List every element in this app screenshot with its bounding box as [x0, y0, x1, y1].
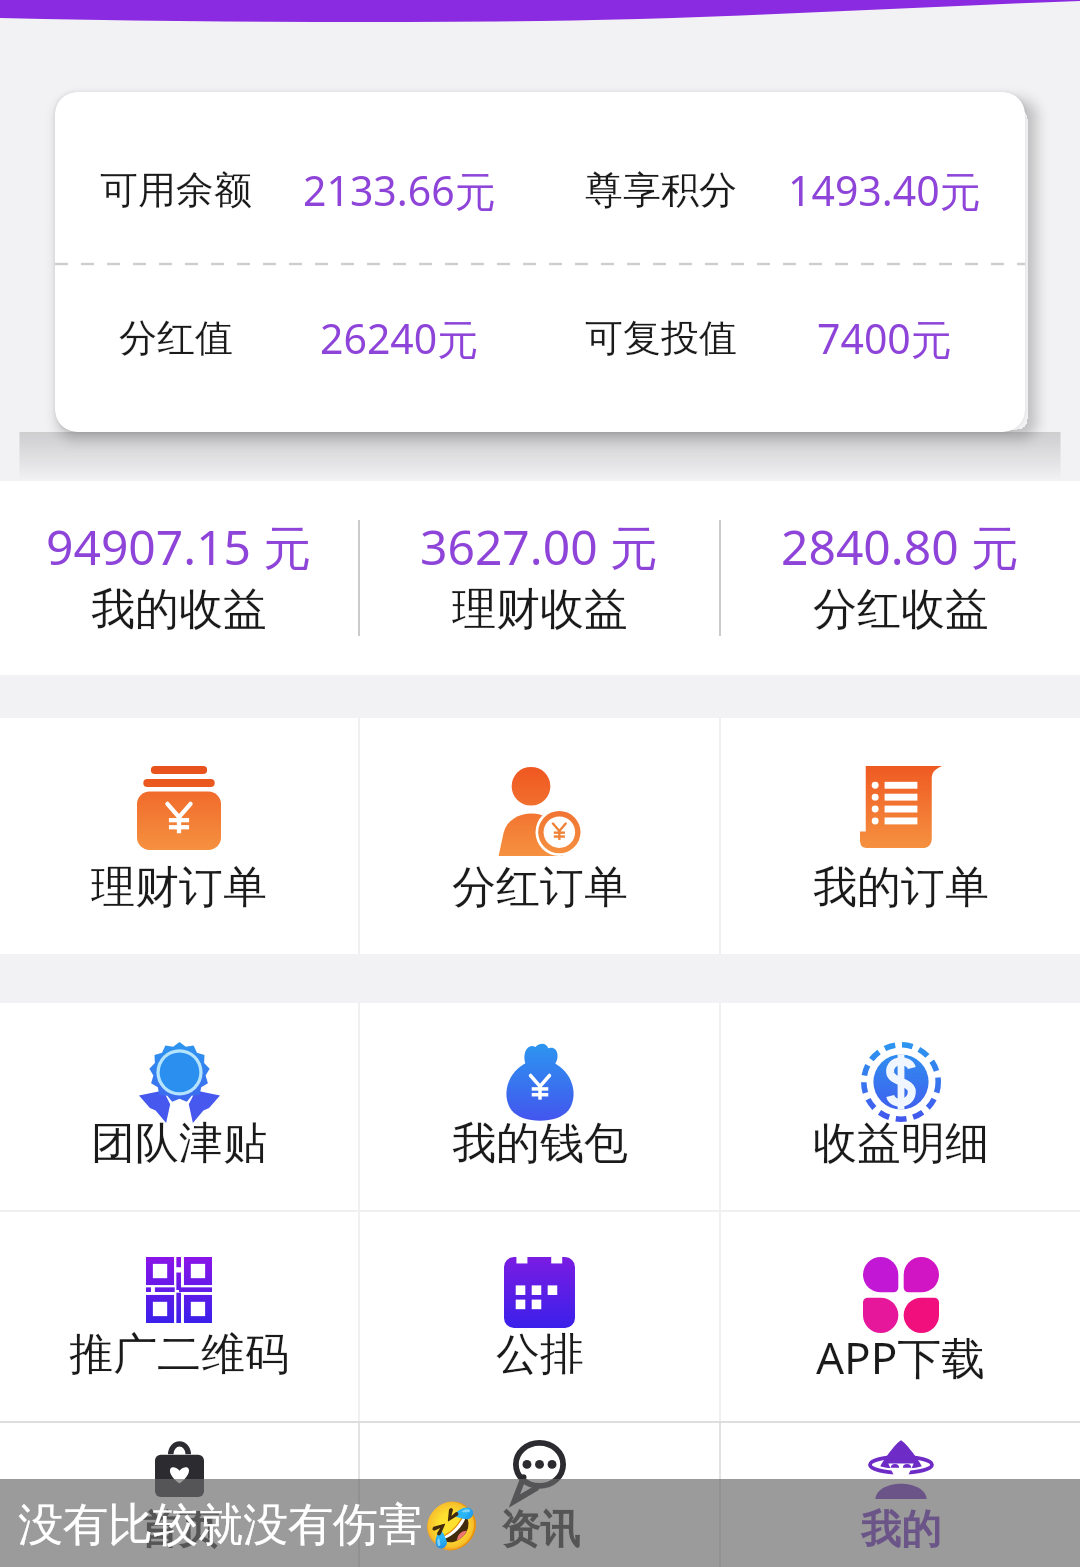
button[interactable]: 我的 [721, 1423, 1080, 1567]
staticText: 首页 [139, 1504, 219, 1554]
staticText: 94907.15 元 [46, 514, 312, 580]
staticText: 分红收益 [813, 582, 989, 637]
staticText: 资讯 [500, 1504, 580, 1554]
staticText: 我的收益 [91, 582, 267, 637]
staticText: 尊享积分 [585, 166, 737, 214]
staticText: 3627.00 元 [420, 514, 659, 580]
staticText: 公排 [496, 1327, 584, 1382]
button[interactable]: 团队津贴 [0, 1003, 358, 1210]
button[interactable]: 公排 [360, 1212, 719, 1421]
button[interactable]: 3627.00 元 [360, 481, 719, 675]
staticText: APP下载 [816, 1327, 986, 1387]
staticText: 2840.80 元 [781, 514, 1020, 580]
staticText: 分红订单 [452, 860, 628, 915]
staticText: 理财收益 [452, 582, 628, 637]
staticText: 推广二维码 [69, 1327, 289, 1382]
staticText: 没有比较就没有伤害 [18, 1497, 423, 1554]
button[interactable]: 分红订单 [360, 718, 719, 954]
staticText: 可用余额 [100, 166, 252, 214]
button[interactable]: 资讯 [360, 1423, 719, 1567]
button[interactable]: 可用余额 [55, 92, 1025, 432]
button[interactable]: 推广二维码 [0, 1212, 358, 1421]
button[interactable]: 我的钱包 [360, 1003, 719, 1210]
staticText: 团队津贴 [91, 1116, 267, 1171]
button[interactable]: 2840.80 元 [721, 481, 1080, 675]
staticText: 可复投值 [585, 314, 737, 362]
button[interactable]: 理财订单 [0, 718, 358, 954]
staticText: 2133.66元 [303, 162, 496, 218]
staticText: 我的钱包 [452, 1116, 628, 1171]
button[interactable]: 首页 [0, 1423, 358, 1567]
staticText: 理财订单 [91, 860, 267, 915]
staticText: 🤣 [423, 1499, 481, 1553]
staticText: 我的 [861, 1504, 941, 1554]
button[interactable]: APP下载 [721, 1212, 1080, 1421]
staticText: 收益明细 [813, 1116, 989, 1171]
button[interactable]: 94907.15 元 [0, 481, 358, 675]
staticText: 我的订单 [813, 860, 989, 915]
staticText: 分红值 [119, 314, 233, 362]
staticText: 7400元 [817, 310, 952, 366]
staticText: 1493.40元 [788, 162, 981, 218]
staticText: 26240元 [320, 310, 479, 366]
button[interactable]: 我的订单 [721, 718, 1080, 954]
button[interactable]: 收益明细 [721, 1003, 1080, 1210]
